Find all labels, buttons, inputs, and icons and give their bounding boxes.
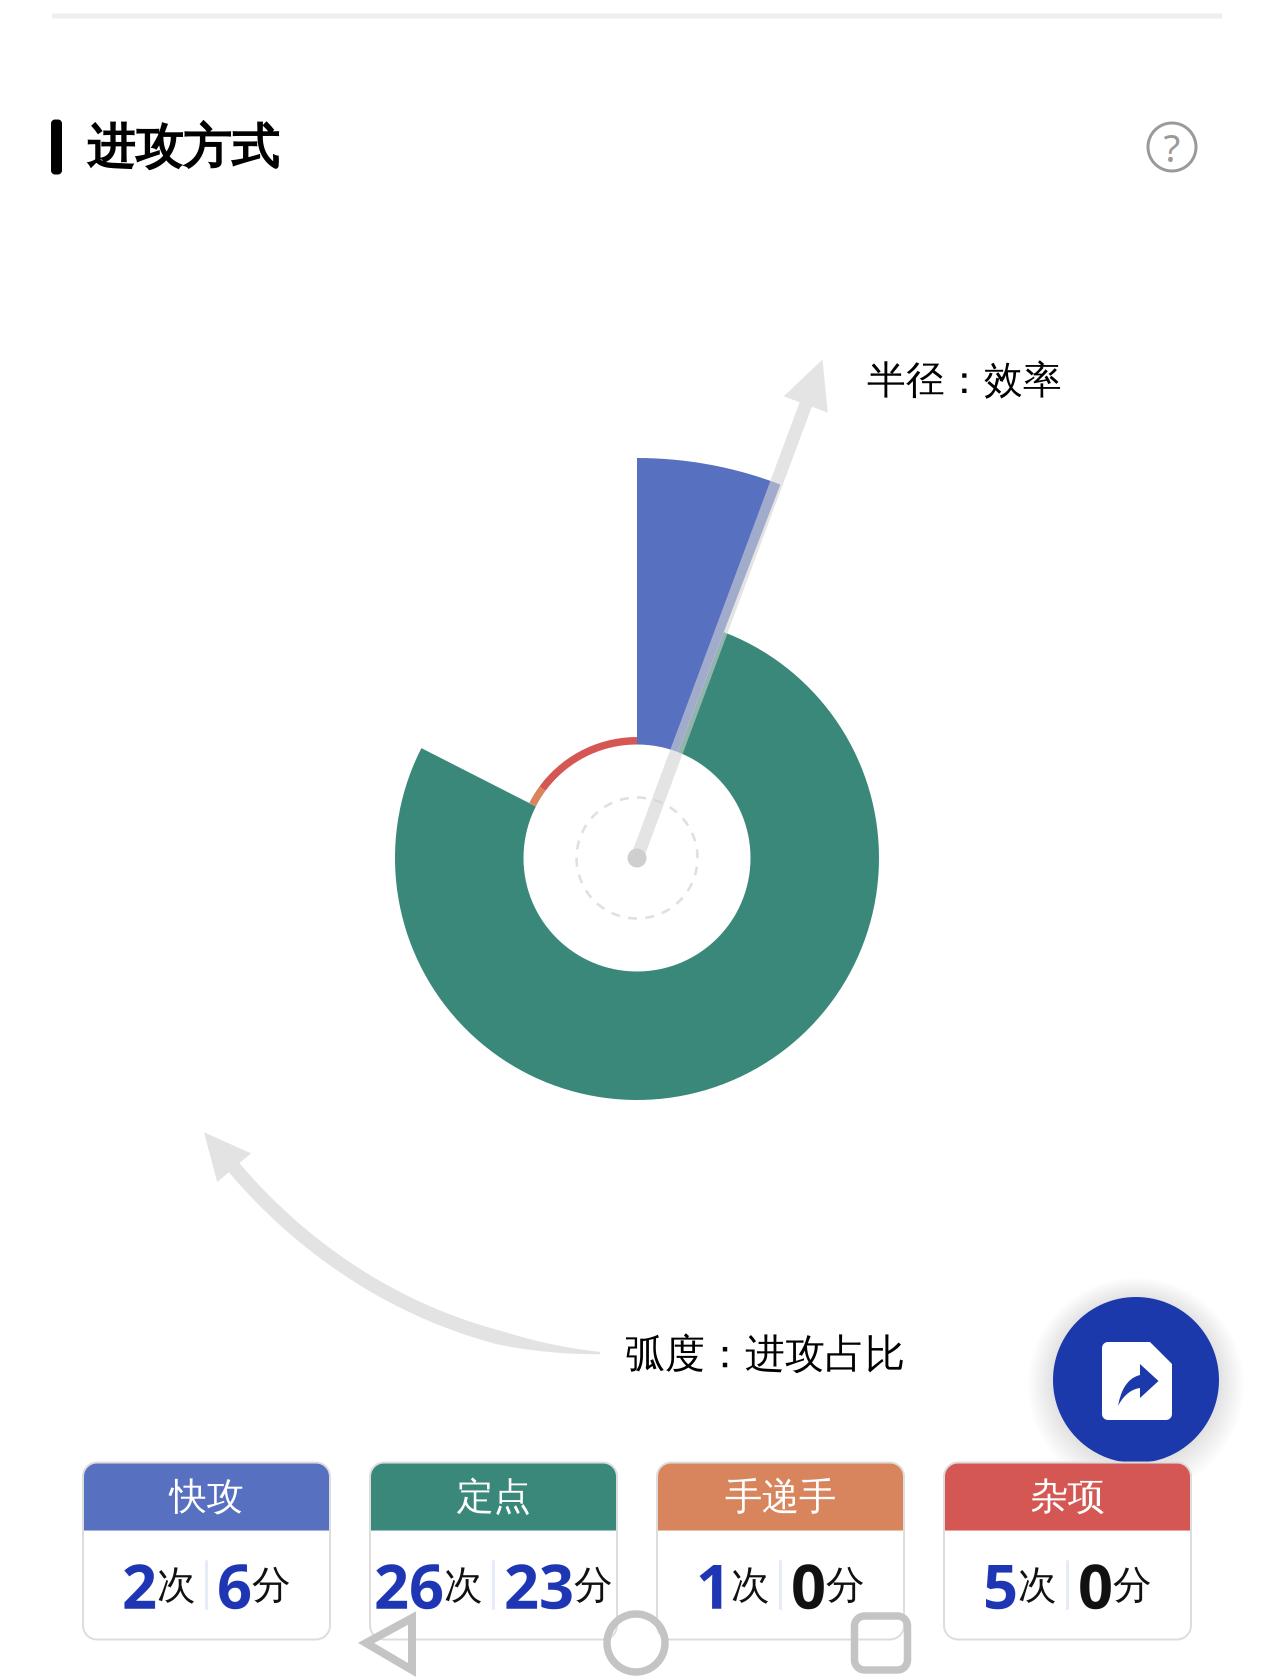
staticText: 次 bbox=[1018, 1561, 1057, 1609]
button[interactable]: 杂项 bbox=[944, 1462, 1191, 1639]
staticText: 进攻方式 bbox=[87, 117, 279, 176]
staticText: 26 bbox=[374, 1544, 444, 1626]
staticText: 次 bbox=[157, 1561, 196, 1609]
staticText: 手递手 bbox=[725, 1474, 836, 1519]
staticText: 6 bbox=[217, 1544, 252, 1626]
button[interactable]: Back bbox=[0, 0, 1272, 1680]
staticText: 1 bbox=[696, 1544, 731, 1626]
staticText: 分 bbox=[252, 1561, 291, 1609]
staticText: 杂项 bbox=[1030, 1474, 1104, 1519]
staticText: 弧度：进攻占比 bbox=[625, 1329, 905, 1378]
button[interactable]: Home bbox=[607, 1614, 665, 1672]
staticText: 次 bbox=[444, 1561, 483, 1609]
staticText: 分 bbox=[826, 1561, 865, 1609]
staticText: 次 bbox=[731, 1561, 770, 1609]
staticText: 分 bbox=[1113, 1561, 1152, 1609]
staticText: 定点 bbox=[456, 1474, 530, 1519]
staticText: 0 bbox=[791, 1544, 826, 1626]
button[interactable]: Share bbox=[1053, 1297, 1219, 1463]
button[interactable]: 快攻 bbox=[83, 1462, 330, 1639]
button[interactable]: Help bbox=[1148, 123, 1196, 171]
staticText: 5 bbox=[983, 1544, 1018, 1626]
button[interactable]: Recents bbox=[854, 1616, 907, 1670]
button[interactable]: 手递手 bbox=[657, 1462, 904, 1639]
staticText: ? bbox=[1163, 121, 1180, 173]
staticText: 23 bbox=[504, 1544, 574, 1626]
staticText: 分 bbox=[574, 1561, 613, 1609]
staticText: 2 bbox=[122, 1544, 157, 1626]
staticText: 0 bbox=[1078, 1544, 1113, 1626]
button[interactable]: 定点 bbox=[370, 1462, 617, 1639]
staticText: 快攻 bbox=[169, 1474, 243, 1519]
staticText: 半径：效率 bbox=[867, 356, 1062, 404]
